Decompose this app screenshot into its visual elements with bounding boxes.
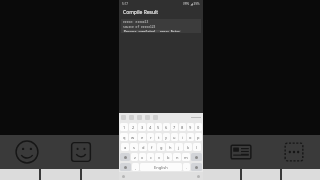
- staticText: q: [123, 135, 126, 140]
- staticText: l: [196, 145, 198, 150]
- button[interactable]: q: [120, 133, 128, 141]
- button[interactable]: s: [130, 143, 138, 151]
- button[interactable]: Back: [122, 175, 125, 178]
- button[interactable]: Symbols: [120, 163, 131, 171]
- staticText: h: [169, 145, 172, 150]
- button[interactable]: 5: [155, 123, 162, 131]
- button[interactable]: d: [139, 143, 147, 151]
- staticText: u: [173, 135, 176, 140]
- button[interactable]: t: [155, 133, 162, 141]
- staticText: a: [124, 145, 127, 150]
- staticText: Compile Result: [123, 9, 159, 16]
- staticText: Process completed - press Enter: [124, 30, 180, 32]
- staticText: 5:17: [122, 2, 128, 6]
- button[interactable]: 6: [163, 123, 170, 131]
- staticText: 6: [165, 125, 168, 130]
- button[interactable]: Recents: [197, 175, 200, 178]
- staticText: p: [197, 135, 200, 140]
- button[interactable]: f: [148, 143, 156, 151]
- button[interactable]: l: [193, 143, 201, 151]
- button[interactable]: 8: [179, 123, 186, 131]
- staticText: j: [178, 145, 180, 150]
- button[interactable]: e: [138, 133, 146, 141]
- button[interactable]: 9: [187, 123, 194, 131]
- staticText: .: [186, 165, 188, 170]
- staticText: error: error23: [123, 20, 149, 24]
- button[interactable]: k: [184, 143, 192, 151]
- staticText: z: [134, 155, 136, 160]
- staticText: 1: [123, 125, 126, 130]
- button[interactable]: ,: [132, 163, 139, 171]
- button[interactable]: i: [179, 133, 186, 141]
- button[interactable]: n: [173, 153, 181, 161]
- button[interactable]: y: [163, 133, 170, 141]
- staticText: c: [150, 155, 152, 160]
- staticText: d: [142, 145, 145, 150]
- staticText: g: [160, 145, 163, 150]
- staticText: e: [141, 135, 144, 140]
- staticText: o: [189, 135, 192, 140]
- button[interactable]: 1: [120, 123, 128, 131]
- staticText: 7: [173, 125, 176, 130]
- button[interactable]: h: [166, 143, 174, 151]
- button[interactable]: GIF: [108, 135, 161, 169]
- staticText: f: [151, 145, 153, 150]
- button[interactable]: English: [140, 163, 182, 171]
- button[interactable]: u: [171, 133, 178, 141]
- staticText: w: [131, 135, 135, 140]
- button[interactable]: .: [183, 163, 190, 171]
- button[interactable]: Shift: [120, 153, 130, 161]
- staticText: 5: [157, 125, 160, 130]
- button[interactable]: g: [157, 143, 165, 151]
- button[interactable]: w: [129, 133, 137, 141]
- staticText: i: [182, 135, 184, 140]
- button[interactable]: Backspace: [191, 153, 202, 161]
- staticText: b: [167, 155, 170, 160]
- staticText: k: [187, 145, 190, 150]
- button[interactable]: x: [139, 153, 146, 161]
- button[interactable]: Voice input: [161, 135, 214, 169]
- button[interactable]: 3: [138, 123, 146, 131]
- button[interactable]: 2: [129, 123, 137, 131]
- button[interactable]: r: [147, 133, 154, 141]
- button[interactable]: o: [187, 133, 194, 141]
- staticText: English: [154, 165, 168, 170]
- button[interactable]: c: [147, 153, 154, 161]
- staticText: s: [133, 145, 135, 150]
- button[interactable]: z: [131, 153, 138, 161]
- button[interactable]: p: [195, 133, 202, 141]
- staticText: r: [150, 135, 152, 140]
- button[interactable]: 4: [147, 123, 154, 131]
- button[interactable]: Emoji: [0, 135, 54, 169]
- button[interactable]: Clipboard: [214, 135, 267, 169]
- button[interactable]: b: [164, 153, 172, 161]
- staticText: n: [176, 155, 179, 160]
- staticText: y: [165, 135, 168, 140]
- staticText: VPN ◢ 39%: [183, 2, 200, 6]
- staticText: 9: [189, 125, 192, 130]
- staticText: 8: [181, 125, 184, 130]
- button[interactable]: Stickers: [54, 135, 108, 169]
- button[interactable]: Enter: [191, 163, 202, 171]
- button[interactable]: j: [175, 143, 183, 151]
- button[interactable]: More options: [267, 135, 320, 169]
- staticText: m: [184, 155, 188, 160]
- staticText: 2: [132, 125, 135, 130]
- staticText: 0: [197, 125, 200, 130]
- button[interactable]: m: [182, 153, 190, 161]
- staticText: ,: [135, 165, 137, 170]
- button[interactable]: v: [155, 153, 163, 161]
- button[interactable]: 7: [171, 123, 178, 131]
- staticText: v: [158, 155, 161, 160]
- staticText: 3: [141, 125, 144, 130]
- staticText: source of error123: [123, 25, 156, 29]
- staticText: t: [158, 135, 160, 140]
- button[interactable]: a: [121, 143, 129, 151]
- button[interactable]: 0: [195, 123, 202, 131]
- staticText: x: [141, 155, 144, 160]
